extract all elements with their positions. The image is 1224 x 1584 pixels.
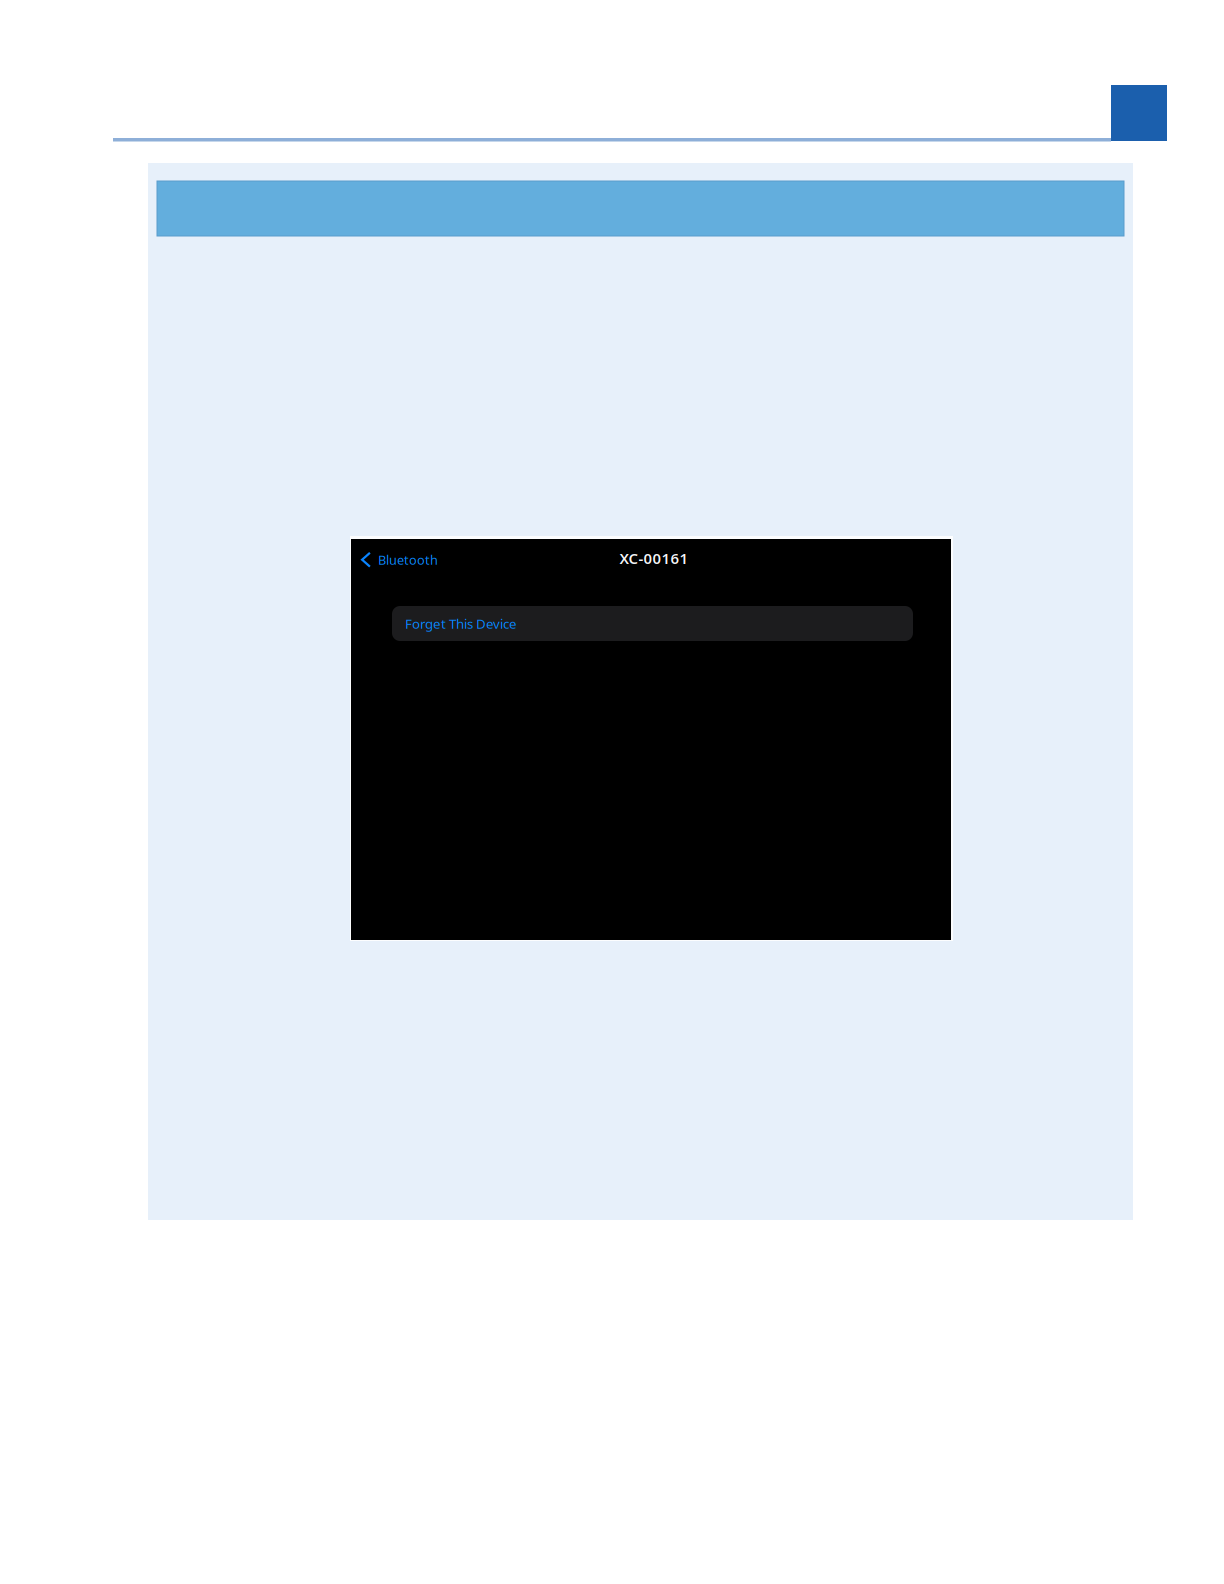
button[interactable]: Forget This Device xyxy=(392,606,913,641)
staticText: Forget This Device xyxy=(405,614,517,633)
button[interactable]: Back to Bluetooth xyxy=(357,546,442,573)
staticText: XC-00161 xyxy=(619,548,688,568)
staticText: Bluetooth xyxy=(378,551,438,568)
